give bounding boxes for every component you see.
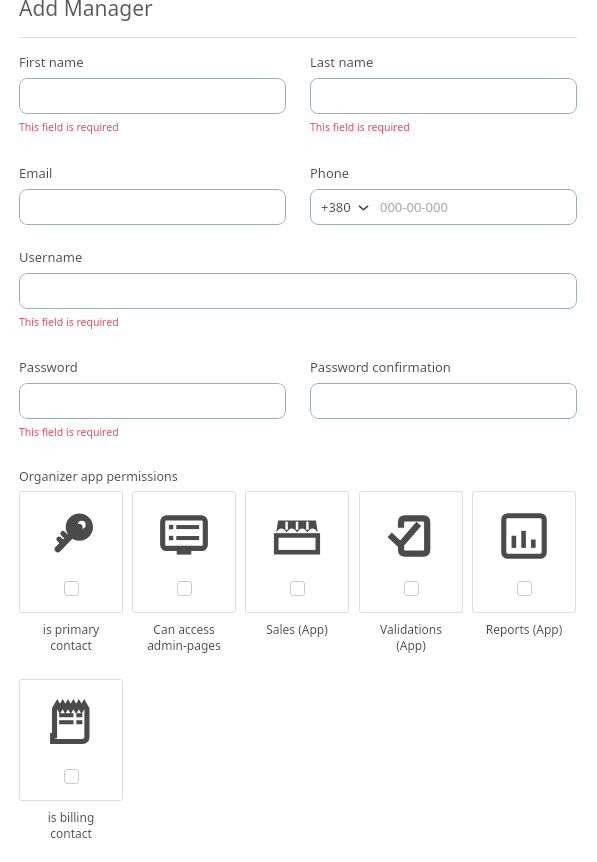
staticText: This field is required [19, 315, 119, 329]
button[interactable]: 000-00-000 [380, 198, 577, 216]
staticText: is primary contact [19, 621, 123, 653]
staticText: Add Manager [19, 0, 153, 23]
button[interactable]: Select country code [321, 198, 369, 216]
staticText: Username [19, 248, 83, 266]
staticText: Can access admin-pages [132, 621, 236, 653]
staticText: Last name [310, 53, 374, 71]
button[interactable] [19, 273, 577, 309]
staticText: This field is required [310, 120, 410, 134]
staticText: Password confirmation [310, 358, 451, 376]
staticText: Organizer app permissions [19, 468, 178, 485]
staticText: +380 [321, 198, 351, 216]
staticText: This field is required [19, 120, 119, 134]
staticText: 000-00-000 [380, 198, 448, 216]
button[interactable]: Reports (App) [472, 491, 576, 637]
button[interactable] [310, 78, 577, 114]
staticText: Password [19, 358, 78, 376]
staticText: First name [19, 53, 84, 71]
staticText: This field is required [19, 425, 119, 439]
staticText: Phone [310, 164, 350, 182]
button[interactable] [19, 383, 286, 419]
staticText: Email [19, 164, 53, 182]
button[interactable] [19, 189, 286, 225]
button[interactable]: is billing contact [19, 679, 123, 841]
button[interactable] [310, 383, 577, 419]
button[interactable]: is primary contact [19, 491, 123, 653]
button[interactable]: Can access admin-pages [132, 491, 236, 653]
button[interactable]: Validations (App) [359, 491, 463, 653]
staticText: Sales (App) [245, 621, 349, 637]
staticText: is billing contact [19, 809, 123, 841]
staticText: Validations (App) [359, 621, 463, 653]
button[interactable]: Sales (App) [245, 491, 349, 637]
staticText: Reports (App) [472, 621, 576, 637]
button[interactable] [19, 78, 286, 114]
